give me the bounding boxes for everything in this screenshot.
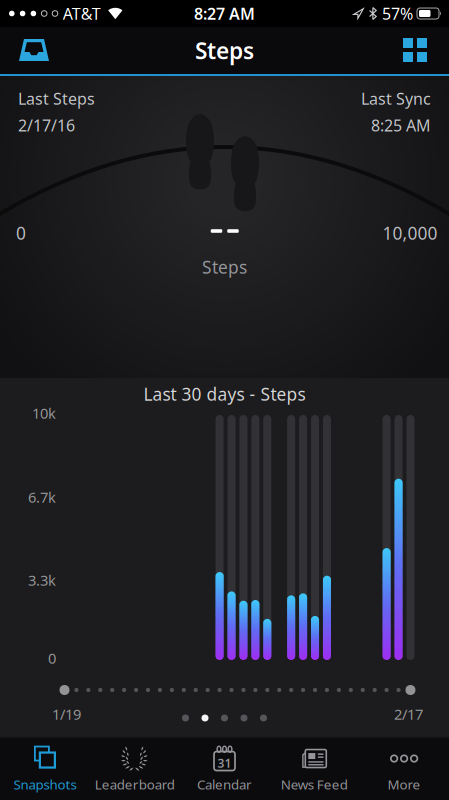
- button[interactable]: More: [359, 737, 449, 800]
- staticText: 57%: [382, 3, 413, 24]
- staticText: Last Sync: [361, 88, 431, 109]
- button[interactable]: News Feed: [269, 737, 359, 800]
- button[interactable]: Snapshots: [0, 737, 90, 800]
- staticText: 2/17/16: [18, 115, 75, 136]
- staticText: More: [388, 775, 421, 793]
- staticText: 3.3k: [28, 570, 56, 590]
- staticText: 8:27 AM: [194, 3, 255, 24]
- staticText: Steps: [195, 35, 254, 65]
- staticText: Last 30 days - Steps: [143, 382, 305, 405]
- staticText: 2/17: [394, 704, 423, 724]
- staticText: Calendar: [197, 775, 252, 793]
- staticText: 10,000: [382, 221, 437, 244]
- button[interactable]: Leaderboard: [90, 737, 180, 800]
- staticText: Leaderboard: [95, 775, 175, 793]
- staticText: 8:25 AM: [371, 115, 431, 136]
- staticText: 0: [16, 221, 26, 244]
- staticText: Steps: [202, 255, 247, 278]
- button[interactable]: Device Sync: [0, 28, 49, 73]
- staticText: 6.7k: [28, 487, 56, 507]
- staticText: 0: [48, 648, 56, 668]
- staticText: 10k: [32, 403, 56, 423]
- staticText: AT&T: [63, 3, 101, 24]
- staticText: 31: [217, 755, 231, 771]
- staticText: 1/19: [52, 704, 81, 724]
- staticText: Snapshots: [13, 775, 76, 793]
- staticText: Last Steps: [18, 88, 95, 109]
- staticText: News Feed: [281, 775, 348, 793]
- button[interactable]: 31: [180, 737, 269, 800]
- button[interactable]: Snapshot Grid: [403, 28, 449, 73]
